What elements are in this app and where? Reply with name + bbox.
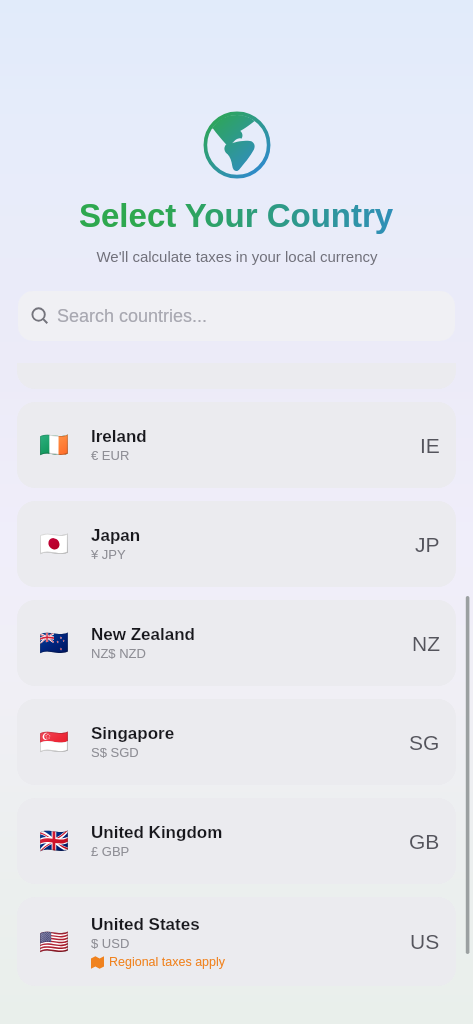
staticText: We'll calculate taxes in your local curr… <box>96 248 378 265</box>
staticText: Japan <box>91 526 141 545</box>
staticText: JP <box>415 533 440 556</box>
button[interactable]: 🇮🇪 <box>17 402 456 488</box>
staticText: 🇳🇿 <box>39 629 69 657</box>
button[interactable]: 🇮🇳 <box>17 303 456 389</box>
button[interactable]: Search countries... <box>18 291 455 341</box>
staticText: $ USD <box>91 936 130 951</box>
staticText: 🇸🇬 <box>39 728 69 756</box>
staticText: NZ <box>412 632 440 655</box>
staticText: 🇺🇸 <box>39 928 69 956</box>
button[interactable]: 🇯🇵 <box>17 501 456 587</box>
staticText: New Zealand <box>91 625 195 644</box>
staticText: Singapore <box>91 724 175 743</box>
other: Globe <box>202 110 272 180</box>
staticText: GB <box>409 830 440 853</box>
staticText: ¥ JPY <box>91 547 126 562</box>
staticText: 🇮🇪 <box>39 431 69 459</box>
button[interactable]: 🇬🇧 <box>17 798 456 884</box>
staticText: Regional taxes apply <box>109 955 226 969</box>
staticText: IE <box>420 434 440 457</box>
button[interactable]: 🇸🇬 <box>17 699 456 785</box>
staticText: S$ SGD <box>91 745 139 760</box>
staticText: Search countries... <box>57 306 208 326</box>
staticText: Select Your Country <box>79 197 394 234</box>
staticText: NZ$ NZD <box>91 646 146 661</box>
staticText: United States <box>91 915 200 934</box>
staticText: United Kingdom <box>91 823 223 842</box>
staticText: Ireland <box>91 427 147 446</box>
staticText: SG <box>409 731 440 754</box>
staticText: ₹ INR <box>91 348 125 366</box>
button[interactable]: 🇺🇸 <box>17 897 456 986</box>
staticText: € EUR <box>91 448 130 463</box>
staticText: 🇯🇵 <box>39 530 69 558</box>
staticText: 🇬🇧 <box>39 827 69 855</box>
button[interactable]: 🇳🇿 <box>17 600 456 686</box>
staticText: £ GBP <box>91 844 130 859</box>
staticText: US <box>410 930 440 953</box>
